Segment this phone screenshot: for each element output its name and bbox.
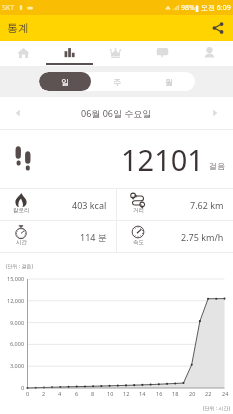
- staticText: 월: [165, 77, 173, 87]
- staticText: 6: [75, 390, 79, 397]
- staticText: 22: [205, 390, 212, 397]
- button[interactable]: 칼로리: [0, 189, 116, 220]
- staticText: 15,000: [7, 275, 25, 282]
- staticText: 걸음: [209, 161, 225, 171]
- button[interactable]: 거리: [117, 189, 233, 220]
- staticText: 속도: [133, 239, 144, 246]
- staticText: 98%: [181, 3, 195, 13]
- button[interactable]: Next day: [205, 103, 225, 123]
- staticText: 통계: [7, 21, 29, 35]
- staticText: 8: [91, 390, 95, 397]
- staticText: 4: [58, 390, 62, 397]
- button[interactable]: Profile: [186, 41, 233, 63]
- staticText: 주: [113, 77, 121, 87]
- staticText: SKT: [2, 3, 15, 13]
- staticText: 시간: [16, 239, 27, 246]
- staticText: 일: [61, 77, 69, 87]
- staticText: 칼로리: [13, 207, 30, 214]
- button[interactable]: Home: [0, 41, 46, 63]
- staticText: 0: [21, 384, 25, 391]
- button[interactable]: 시간: [0, 221, 116, 252]
- staticText: 2: [42, 390, 46, 397]
- button[interactable]: Messages: [139, 41, 186, 63]
- staticText: (단위 : 시간): [203, 405, 230, 412]
- button[interactable]: 월: [143, 72, 195, 91]
- staticText: 12101: [121, 140, 204, 179]
- staticText: 2.75 km/h: [181, 231, 224, 243]
- staticText: 24: [222, 390, 229, 397]
- button[interactable]: 속도: [117, 221, 233, 252]
- staticText: 오전 6:09: [201, 3, 231, 13]
- staticText: 0: [26, 390, 30, 397]
- staticText: 거리: [133, 207, 144, 214]
- staticText: 06월 06일 수요일: [81, 107, 152, 119]
- staticText: 12,000: [7, 297, 25, 304]
- button[interactable]: 주: [91, 72, 143, 91]
- staticText: 9,000: [10, 319, 25, 326]
- button[interactable]: Statistics: [46, 41, 92, 63]
- button[interactable]: Ranking: [92, 41, 139, 63]
- staticText: 10: [107, 390, 114, 397]
- staticText: 14: [139, 390, 146, 397]
- staticText: (단위 : 걸음): [6, 263, 33, 270]
- button[interactable]: 일: [39, 72, 91, 91]
- staticText: 7.62 km: [190, 199, 224, 211]
- button[interactable]: Share: [207, 17, 229, 39]
- staticText: 6,000: [10, 340, 25, 347]
- staticText: 12: [123, 390, 130, 397]
- staticText: 18: [172, 390, 179, 397]
- staticText: 403 kcal: [72, 199, 107, 211]
- staticText: 3,000: [10, 362, 25, 369]
- staticText: 20: [189, 390, 196, 397]
- button[interactable]: Previous day: [8, 103, 28, 123]
- staticText: 114 분: [80, 231, 107, 243]
- staticText: 16: [156, 390, 163, 397]
